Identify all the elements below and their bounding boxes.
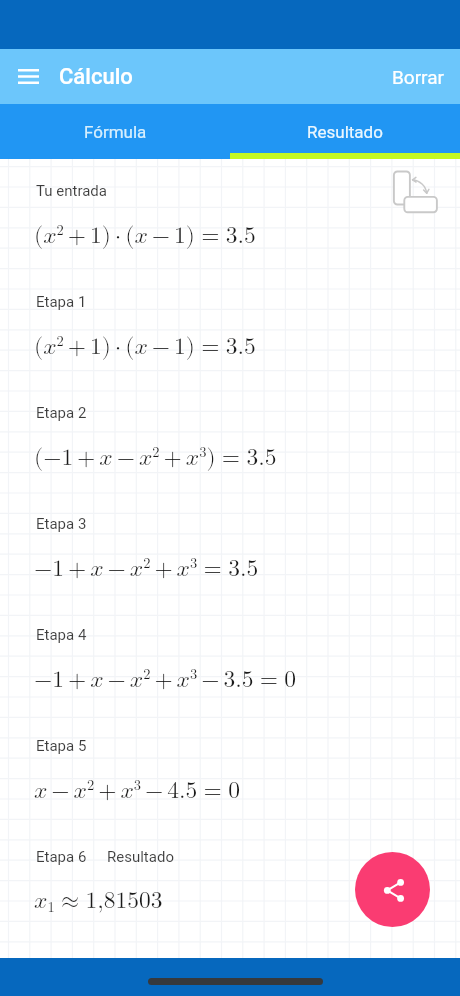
staticText: Resultado bbox=[107, 848, 174, 866]
button[interactable]: Rotate screen bbox=[385, 166, 441, 222]
button[interactable]: Fórmula bbox=[0, 104, 230, 159]
staticText: 𝑥 − 𝑥2 + 𝑥3 − 4.5 = 0 bbox=[34, 778, 240, 802]
staticText: (−1 + 𝑥 − 𝑥2 + 𝑥3) = 3.5 bbox=[34, 445, 277, 469]
staticText: Etapa 2 bbox=[36, 404, 87, 422]
staticText: −1 + 𝑥 − 𝑥2 + 𝑥3 − 3.5 = 0 bbox=[34, 667, 297, 691]
staticText: Etapa 1 bbox=[36, 293, 87, 311]
staticText: Etapa 3 bbox=[36, 515, 87, 533]
staticText: Tu entrada bbox=[36, 182, 107, 200]
button[interactable]: Menu bbox=[0, 49, 56, 104]
staticText: Resultado bbox=[307, 122, 383, 142]
staticText: Etapa 4 bbox=[36, 626, 87, 644]
staticText: Cálculo bbox=[59, 64, 133, 90]
staticText: 𝑥1 ≈ 1,81503 bbox=[34, 889, 163, 915]
button[interactable]: Resultado bbox=[230, 104, 460, 159]
button[interactable]: Share bbox=[355, 852, 430, 927]
staticText: −1 + 𝑥 − 𝑥2 + 𝑥3 = 3.5 bbox=[34, 556, 259, 580]
staticText: (𝑥2 + 1) · (𝑥 − 1) = 3.5 bbox=[34, 223, 256, 247]
staticText: Borrar bbox=[392, 66, 444, 88]
staticText: Fórmula bbox=[84, 122, 147, 142]
staticText: Etapa 6 bbox=[36, 848, 87, 866]
staticText: (𝑥2 + 1) · (𝑥 − 1) = 3.5 bbox=[34, 334, 256, 358]
staticText: Etapa 5 bbox=[36, 737, 87, 755]
button[interactable]: Borrar bbox=[374, 49, 460, 104]
